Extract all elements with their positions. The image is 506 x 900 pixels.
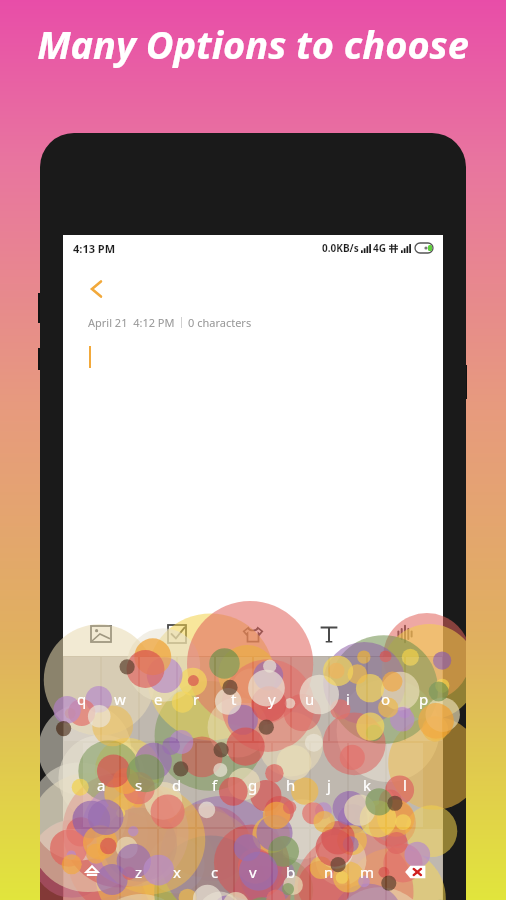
button[interactable]: n — [311, 829, 347, 900]
button[interactable]: b — [273, 829, 309, 900]
staticText: f — [212, 775, 218, 795]
staticText: z — [135, 862, 143, 882]
staticText: u — [305, 689, 315, 709]
staticText: 4G — [373, 241, 386, 255]
button[interactable]: s — [121, 743, 157, 827]
staticText: 4:13 PM — [73, 241, 116, 256]
button[interactable]: w — [102, 657, 138, 741]
staticText: v — [249, 862, 257, 882]
staticText: Many Options to choose — [0, 18, 506, 70]
button[interactable]: Insert image — [63, 611, 139, 656]
button[interactable]: o — [368, 657, 404, 741]
staticText: s — [135, 775, 143, 795]
staticText: o — [381, 689, 391, 709]
staticText: m — [360, 862, 375, 882]
staticText: t — [231, 689, 237, 709]
button[interactable]: t — [216, 657, 252, 741]
staticText: 0.0KB/s — [322, 241, 359, 255]
button[interactable]: h — [273, 743, 309, 827]
staticText: April 21 4:12 PM — [88, 315, 175, 330]
staticText: d — [172, 775, 182, 795]
button[interactable]: u — [292, 657, 328, 741]
staticText: l — [403, 775, 407, 795]
button[interactable]: l — [387, 743, 423, 827]
staticText: p — [419, 689, 429, 709]
button[interactable]: Backspace — [387, 829, 442, 900]
button[interactable]: Checklist — [139, 611, 215, 656]
button[interactable]: j — [311, 743, 347, 827]
button[interactable]: x — [159, 829, 195, 900]
button[interactable]: Text format — [291, 611, 367, 656]
button[interactable]: e — [140, 657, 176, 741]
button[interactable]: q — [64, 657, 100, 741]
staticText: a — [97, 775, 106, 795]
button[interactable]: y — [254, 657, 290, 741]
staticText: k — [363, 775, 372, 795]
staticText: y — [268, 689, 276, 709]
button[interactable]: d — [159, 743, 195, 827]
staticText: i — [346, 689, 350, 709]
button[interactable]: r — [178, 657, 214, 741]
button[interactable]: z — [121, 829, 157, 900]
button[interactable]: i — [330, 657, 366, 741]
staticText: h — [286, 775, 296, 795]
button[interactable]: Voice — [367, 611, 443, 656]
staticText: q — [77, 689, 87, 709]
button[interactable]: p — [406, 657, 442, 741]
staticText: e — [154, 689, 163, 709]
button[interactable]: c — [197, 829, 233, 900]
button[interactable]: k — [349, 743, 385, 827]
button[interactable]: Back — [83, 275, 111, 303]
staticText: 0 characters — [188, 315, 252, 330]
staticText: j — [327, 775, 331, 795]
staticText: n — [324, 862, 334, 882]
button[interactable]: Theme — [215, 611, 291, 656]
staticText: w — [114, 689, 126, 709]
button[interactable]: v — [235, 829, 271, 900]
staticText: b — [286, 862, 296, 882]
staticText: g — [248, 775, 258, 795]
button[interactable]: m — [349, 829, 385, 900]
button[interactable]: Shift — [64, 829, 119, 900]
staticText: x — [173, 862, 181, 882]
button[interactable]: f — [197, 743, 233, 827]
button[interactable]: a — [83, 743, 119, 827]
staticText: r — [193, 689, 200, 709]
button[interactable]: g — [235, 743, 271, 827]
staticText: c — [211, 862, 219, 882]
